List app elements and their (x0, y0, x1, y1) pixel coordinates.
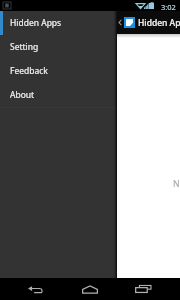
staticText: No hidden apps (173, 178, 180, 190)
button[interactable]: Recent apps (128, 278, 158, 300)
staticText: 3:02 (161, 2, 176, 12)
button[interactable]: About (0, 83, 117, 107)
button[interactable]: Setting (0, 35, 117, 59)
staticText: Hidden Apps (10, 17, 62, 29)
button[interactable]: Home (75, 278, 105, 300)
button[interactable]: Hidden Apps (0, 11, 117, 35)
staticText: Feedback (10, 65, 48, 77)
staticText: Hidden Apps (138, 17, 180, 29)
staticText: Setting (10, 41, 39, 53)
button[interactable]: Back (21, 278, 50, 300)
button[interactable]: Feedback (0, 59, 117, 83)
staticText: About (10, 89, 35, 101)
